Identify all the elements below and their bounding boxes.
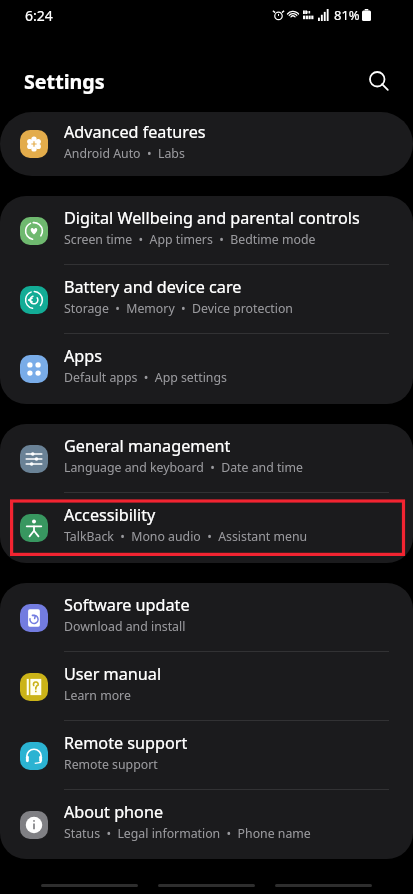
button[interactable]: General management <box>0 424 413 493</box>
button[interactable]: Home <box>148 864 265 894</box>
staticText: About phone <box>64 801 164 823</box>
button[interactable]: Recents <box>31 864 148 894</box>
staticText: Remote support <box>64 732 188 754</box>
staticText: Accessibility <box>64 504 156 526</box>
staticText: 6:24 <box>25 6 53 25</box>
staticText: Settings <box>24 68 105 95</box>
staticText: General management <box>64 435 231 457</box>
button[interactable]: Advanced features <box>0 112 413 176</box>
staticText: Learn more <box>64 687 131 704</box>
button[interactable]: Accessibility <box>0 493 413 562</box>
button[interactable]: Digital Wellbeing and parental controls <box>0 196 413 265</box>
staticText: TalkBack • Mono audio • Assistant menu <box>64 528 308 545</box>
staticText: 81% <box>334 6 360 24</box>
button[interactable]: Apps <box>0 334 413 403</box>
staticText: User manual <box>64 663 162 685</box>
button[interactable]: Software update <box>0 583 413 652</box>
staticText: Screen time • App timers • Bedtime mode <box>64 231 316 248</box>
staticText: Digital Wellbeing and parental controls <box>64 207 360 229</box>
staticText: Storage • Memory • Device protection <box>64 300 293 317</box>
button[interactable]: Back <box>265 864 382 894</box>
staticText: Default apps • App settings <box>64 369 227 386</box>
button[interactable]: User manual <box>0 652 413 721</box>
staticText: Battery and device care <box>64 276 242 298</box>
button[interactable]: About phone <box>0 790 413 859</box>
button[interactable]: Remote support <box>0 721 413 790</box>
staticText: Software update <box>64 594 190 616</box>
staticText: Remote support <box>64 756 158 773</box>
staticText: Download and install <box>64 618 186 635</box>
staticText: Status • Legal information • Phone name <box>64 825 311 842</box>
staticText: Language and keyboard • Date and time <box>64 459 303 476</box>
staticText: Apps <box>64 345 103 367</box>
button[interactable]: Search <box>359 61 399 101</box>
button[interactable]: Battery and device care <box>0 265 413 334</box>
staticText: Android Auto • Labs <box>64 145 185 162</box>
staticText: Advanced features <box>64 121 206 143</box>
